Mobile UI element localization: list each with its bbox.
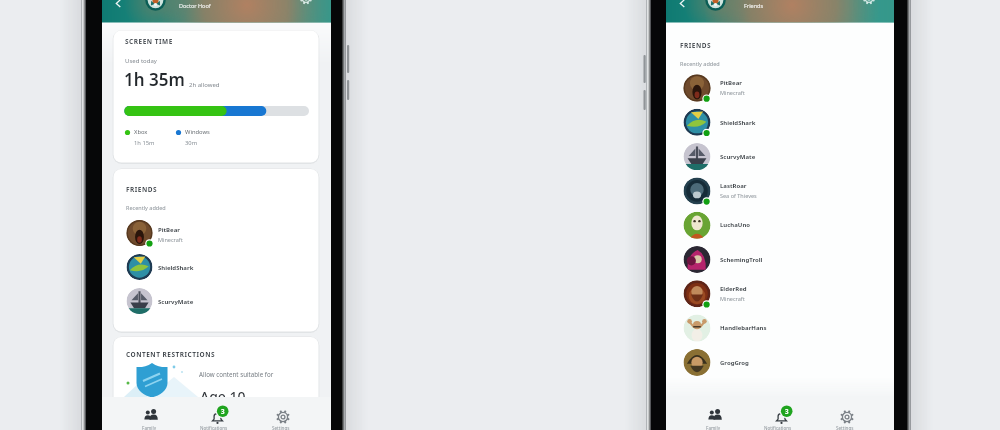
staticText: 1h 15m [134,139,155,147]
staticText: ScurvyMate [158,298,194,306]
button[interactable] [113,169,318,331]
button[interactable] [263,399,303,430]
button[interactable] [862,0,882,12]
staticText: PitBear [720,79,742,87]
button[interactable] [110,0,128,12]
staticText: SCREEN TIME [125,37,173,46]
staticText: Doctor Hoof [179,2,211,9]
button[interactable] [676,312,884,344]
staticText: Minecraft [720,89,745,96]
staticText: CONTENT RESTRICTIONS [126,350,216,359]
staticText: Settings [272,425,290,430]
button[interactable] [198,399,238,430]
staticText: 2h allowed [189,81,220,89]
button[interactable] [131,399,171,430]
staticText: LastRoar [720,182,747,190]
button[interactable] [122,286,312,316]
staticText: LuchaUno [720,221,751,229]
staticText: Settings [836,425,854,430]
button[interactable] [113,337,318,397]
staticText: Recently added [680,60,720,67]
staticText: FRIENDS [680,41,712,50]
staticText: FRIENDS [126,185,158,194]
button[interactable] [676,346,884,378]
staticText: ShieldShark [720,119,756,127]
staticText: Family [142,425,156,430]
staticText: ScurvyMate [720,153,756,161]
staticText: Used today [125,57,157,65]
staticText: ElderRed [720,285,747,293]
staticText: GrogGrog [720,359,749,367]
button[interactable] [827,399,867,430]
staticText: Minecraft [720,295,745,302]
staticText: SchemingTroll [720,256,763,264]
staticText: ShieldShark [158,264,194,272]
button[interactable] [113,30,318,162]
staticText: Sea of Thieves [720,192,757,199]
staticText: Notifications [764,425,792,430]
staticText: Friends [744,2,764,9]
button[interactable] [676,72,884,104]
staticText: Family [706,425,720,430]
button[interactable] [122,218,312,248]
staticText: 30m [185,139,198,147]
button[interactable] [676,141,884,173]
staticText: 3 [785,407,789,415]
button[interactable] [122,252,312,282]
button[interactable] [695,399,735,430]
staticText: HandlebarHans [720,324,767,332]
staticText: PitBear [158,226,180,234]
staticText: Windows [185,128,210,136]
button[interactable] [298,0,318,12]
button[interactable] [676,244,884,276]
staticText: Notifications [200,425,228,430]
staticText: Age 10 [200,387,246,406]
button[interactable] [676,278,884,310]
staticText: Xbox [134,128,148,136]
button[interactable] [676,106,884,138]
staticText: Recently added [126,204,166,211]
button[interactable] [676,175,884,207]
button[interactable] [674,0,692,12]
button[interactable] [676,209,884,241]
staticText: 3 [221,407,225,415]
staticText: Minecraft [158,236,183,243]
button[interactable] [762,399,802,430]
staticText: Allow content suitable for [199,370,274,378]
staticText: 1h 35m [124,68,185,91]
